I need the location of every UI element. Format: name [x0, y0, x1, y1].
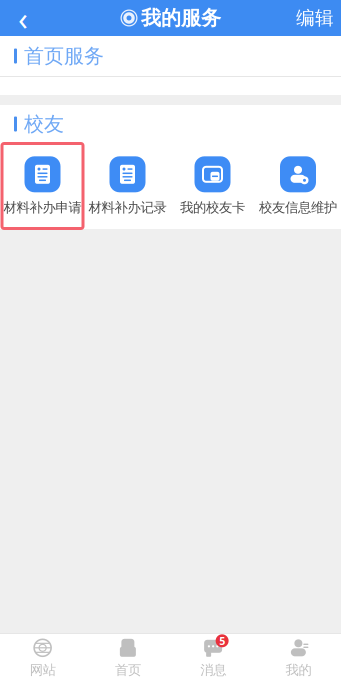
staticText: 5 — [219, 634, 225, 648]
staticText: 网站 — [30, 662, 56, 678]
staticText: 编辑 — [296, 6, 334, 29]
button[interactable]: 校友信息维护 — [258, 150, 338, 222]
staticText: 我的校友卡 — [180, 199, 245, 216]
button[interactable]: Back — [0, 0, 46, 36]
button[interactable]: 我的校友卡 — [172, 150, 252, 222]
staticText: 消息 — [200, 662, 226, 678]
staticText: 材料补办申请 — [3, 199, 81, 216]
button[interactable]: 我的 — [256, 635, 341, 679]
staticText: 材料补办记录 — [88, 199, 166, 216]
staticText: 我的服务 — [141, 6, 221, 30]
button[interactable]: 材料补办申请 — [2, 150, 82, 222]
button[interactable]: 首页 — [85, 635, 170, 679]
button[interactable]: 材料补办记录 — [87, 150, 167, 222]
staticText: 首页 — [115, 662, 141, 678]
staticText: 校友 — [24, 112, 64, 136]
staticText: 校友信息维护 — [259, 199, 337, 216]
button[interactable]: 网站 — [0, 635, 85, 679]
staticText: ‹ — [18, 0, 28, 39]
staticText: 我的 — [285, 662, 311, 678]
staticText: 首页服务 — [24, 44, 104, 68]
button[interactable]: 5 — [170, 635, 256, 679]
button[interactable]: 编辑 — [289, 0, 341, 36]
